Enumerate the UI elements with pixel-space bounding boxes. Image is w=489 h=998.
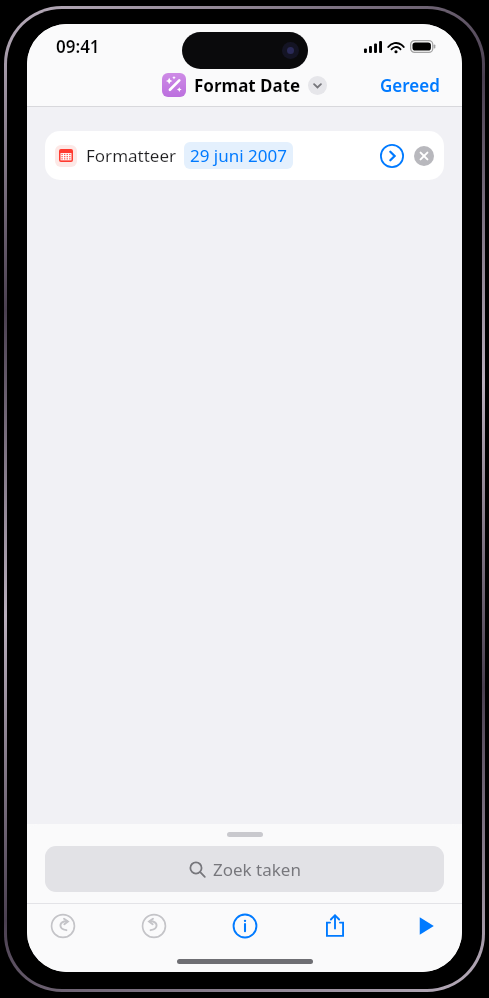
- staticText: Gereed: [380, 74, 440, 97]
- button[interactable]: 29 juni 2007: [184, 142, 293, 169]
- staticText: Format Date: [194, 74, 301, 97]
- button[interactable]: Run: [404, 904, 448, 948]
- button[interactable]: Show more: [380, 144, 404, 168]
- button[interactable]: Show shortcut options: [308, 76, 327, 95]
- button[interactable]: Redo: [132, 904, 176, 948]
- staticText: Zoek taken: [213, 858, 301, 881]
- staticText: 29 juni 2007: [190, 144, 287, 167]
- button[interactable]: Zoek taken: [45, 846, 444, 892]
- button[interactable]: Share: [313, 904, 357, 948]
- staticText: 09:41: [56, 35, 100, 58]
- staticText: Formatteer: [86, 144, 177, 167]
- button[interactable]: Gereed: [358, 68, 462, 103]
- button[interactable]: Details: [223, 904, 267, 948]
- button[interactable]: Undo: [41, 904, 85, 948]
- button[interactable]: Formatteer: [45, 131, 444, 180]
- button[interactable]: Remove action: [414, 146, 434, 166]
